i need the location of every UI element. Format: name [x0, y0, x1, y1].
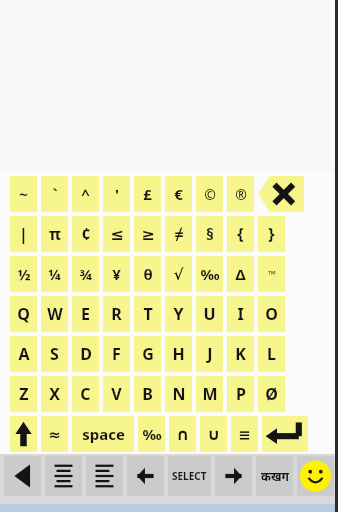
staticText: ¼	[48, 264, 61, 284]
button[interactable]: |	[10, 216, 37, 252]
button[interactable]: {	[227, 216, 254, 252]
button[interactable]: ≥	[134, 216, 161, 252]
staticText: ‰	[142, 424, 162, 444]
button[interactable]: G	[134, 336, 161, 372]
button[interactable]: SELECT	[168, 456, 211, 496]
button[interactable]: ∩	[169, 416, 196, 452]
button[interactable]: π	[41, 216, 68, 252]
button[interactable]: Shift	[10, 416, 37, 452]
button[interactable]: Z	[10, 376, 37, 412]
button[interactable]: €	[165, 176, 192, 212]
staticText: M	[202, 383, 218, 405]
staticText: E	[81, 303, 90, 325]
button[interactable]: ≠	[165, 216, 192, 252]
button[interactable]: I	[227, 296, 254, 332]
button[interactable]: M	[196, 376, 223, 412]
staticText: ®	[235, 185, 247, 204]
button[interactable]: U	[196, 296, 223, 332]
button[interactable]: ≡	[231, 416, 258, 452]
button[interactable]: C	[72, 376, 99, 412]
button[interactable]: ¢	[72, 216, 99, 252]
staticText: ½	[17, 264, 31, 284]
button[interactable]: R	[103, 296, 130, 332]
button[interactable]: Δ	[227, 256, 254, 292]
button[interactable]: H	[165, 336, 192, 372]
button[interactable]: L	[258, 336, 285, 372]
staticText: ≠	[174, 223, 184, 245]
button[interactable]: P	[227, 376, 254, 412]
staticText: T	[143, 303, 153, 325]
button[interactable]: θ	[134, 256, 161, 292]
button[interactable]: ~	[10, 176, 37, 212]
staticText: SELECT	[172, 469, 207, 483]
button[interactable]: √	[165, 256, 192, 292]
button[interactable]: T	[134, 296, 161, 332]
button[interactable]: space	[72, 416, 134, 452]
button[interactable]: F	[103, 336, 130, 372]
button[interactable]: }	[258, 216, 285, 252]
button[interactable]: ©	[196, 176, 223, 212]
staticText: ∪	[207, 425, 220, 444]
button[interactable]: Y	[165, 296, 192, 332]
button[interactable]: A	[10, 336, 37, 372]
button[interactable]: Q	[10, 296, 37, 332]
button[interactable]: E	[72, 296, 99, 332]
staticText: कखग	[261, 468, 289, 484]
staticText: Δ	[235, 264, 246, 284]
button[interactable]: §	[196, 216, 223, 252]
button[interactable]: B	[134, 376, 161, 412]
staticText: K	[235, 343, 246, 365]
staticText: ¢	[81, 223, 91, 245]
staticText: |	[19, 223, 28, 245]
staticText: J	[207, 343, 213, 365]
button[interactable]: ¾	[72, 256, 99, 292]
button[interactable]: Align left	[86, 456, 123, 496]
button[interactable]: W	[41, 296, 68, 332]
staticText: R	[111, 303, 122, 325]
button[interactable]: O	[258, 296, 285, 332]
button[interactable]: V	[103, 376, 130, 412]
button[interactable]: ^	[72, 176, 99, 212]
staticText: F	[112, 343, 121, 365]
staticText: Ø	[265, 383, 278, 405]
staticText: C	[80, 383, 91, 405]
button[interactable]: ¥	[103, 256, 130, 292]
button[interactable]: K	[227, 336, 254, 372]
button[interactable]: Enter	[262, 416, 308, 452]
staticText: ~	[19, 184, 28, 204]
staticText: ≥	[141, 225, 155, 244]
button[interactable]: ™	[258, 256, 285, 292]
button[interactable]: Move left	[127, 456, 164, 496]
staticText: G	[142, 343, 154, 365]
staticText: S	[50, 343, 59, 365]
button[interactable]: Align center	[45, 456, 82, 496]
button[interactable]: `	[41, 176, 68, 212]
button[interactable]: ≤	[103, 216, 130, 252]
button[interactable]: '	[103, 176, 130, 212]
staticText: ≡	[238, 426, 251, 443]
button[interactable]: ‰	[138, 416, 165, 452]
staticText: A	[18, 343, 30, 365]
button[interactable]: X	[41, 376, 68, 412]
button[interactable]: Emoji	[297, 456, 334, 496]
button[interactable]: Close keyboard	[258, 176, 304, 212]
button[interactable]: S	[41, 336, 68, 372]
button[interactable]: कखग	[256, 456, 293, 496]
button[interactable]: ½	[10, 256, 37, 292]
staticText: ‰	[200, 264, 220, 284]
button[interactable]: Previous	[4, 456, 41, 496]
button[interactable]: ‰	[196, 256, 223, 292]
button[interactable]: N	[165, 376, 192, 412]
staticText: {	[237, 223, 244, 245]
button[interactable]: J	[196, 336, 223, 372]
button[interactable]: ®	[227, 176, 254, 212]
button[interactable]: ≈	[41, 416, 68, 452]
button[interactable]: ∪	[200, 416, 227, 452]
staticText: Z	[19, 383, 29, 405]
button[interactable]: Ø	[258, 376, 285, 412]
staticText: P	[236, 383, 246, 405]
button[interactable]: ¼	[41, 256, 68, 292]
button[interactable]: D	[72, 336, 99, 372]
button[interactable]: Move right	[215, 456, 252, 496]
button[interactable]: £	[134, 176, 161, 212]
